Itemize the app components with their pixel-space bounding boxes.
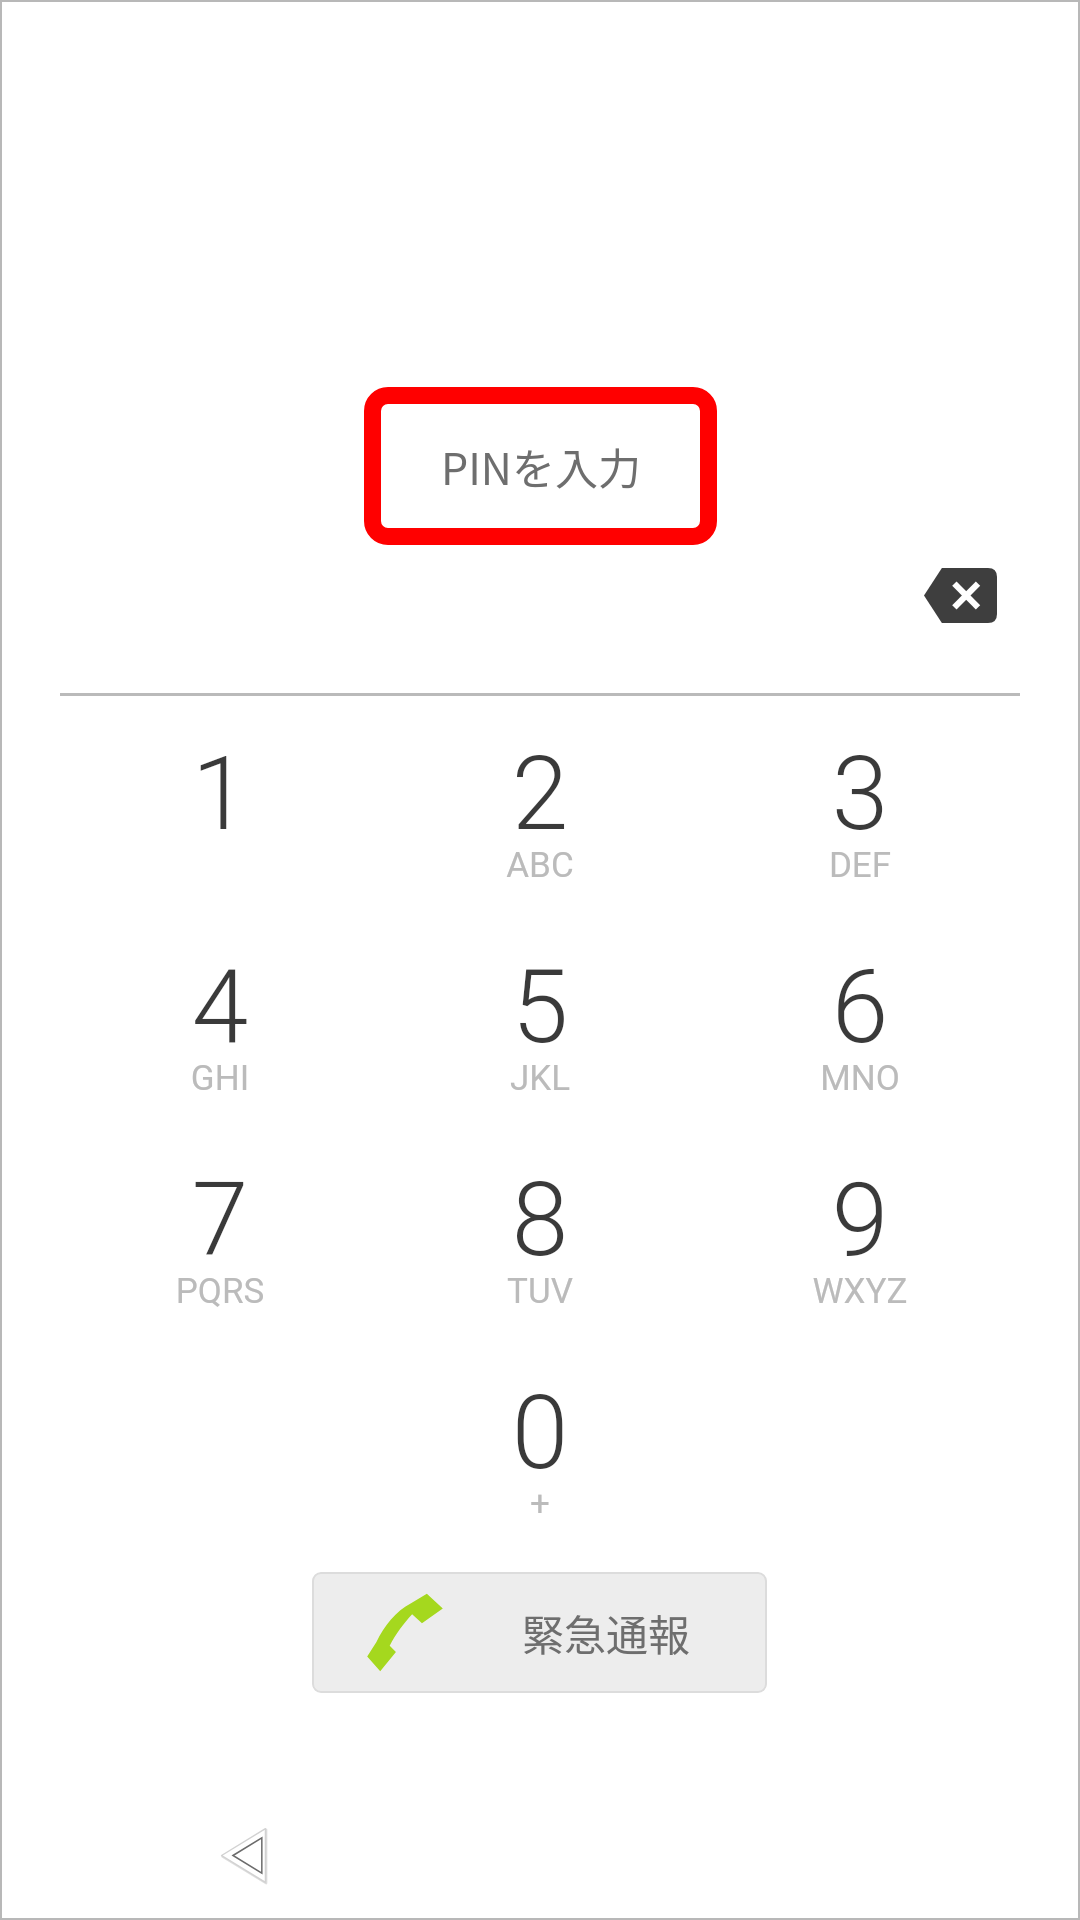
staticText: PQRS <box>60 1271 380 1312</box>
staticText: 1 <box>60 734 380 854</box>
staticText: ABC <box>380 845 700 886</box>
staticText: 8 <box>380 1160 700 1280</box>
button[interactable]: 4 <box>60 931 380 1121</box>
button[interactable]: 7 <box>60 1144 380 1334</box>
button[interactable]: PINを入力 <box>364 387 717 545</box>
staticText: JKL <box>380 1058 700 1099</box>
staticText: 6 <box>700 947 1020 1067</box>
staticText: PINを入力 <box>441 435 641 497</box>
button[interactable]: 0 <box>380 1357 700 1547</box>
button[interactable]: 2 <box>380 718 700 908</box>
staticText: WXYZ <box>700 1271 1020 1312</box>
staticText: GHI <box>60 1058 380 1099</box>
staticText: + <box>380 1484 700 1525</box>
button[interactable]: 緊急通報 <box>312 1572 767 1693</box>
staticText: 緊急通報 <box>522 1602 691 1663</box>
staticText: 5 <box>380 947 700 1067</box>
staticText: MNO <box>700 1058 1020 1099</box>
staticText: 0 <box>380 1373 700 1493</box>
staticText: 7 <box>60 1160 380 1280</box>
staticText: 2 <box>380 734 700 854</box>
button[interactable]: 9 <box>700 1144 1020 1334</box>
staticText: 3 <box>700 734 1020 854</box>
staticText: 9 <box>700 1160 1020 1280</box>
button[interactable]: 5 <box>380 931 700 1121</box>
button[interactable]: Backspace <box>924 568 997 623</box>
button[interactable]: 1 <box>60 718 380 908</box>
staticText: DEF <box>700 845 1020 886</box>
button[interactable]: 6 <box>700 931 1020 1121</box>
button[interactable]: 3 <box>700 718 1020 908</box>
button[interactable]: Back <box>218 1826 269 1885</box>
staticText: 4 <box>60 947 380 1067</box>
staticText: TUV <box>380 1271 700 1312</box>
button[interactable]: 8 <box>380 1144 700 1334</box>
